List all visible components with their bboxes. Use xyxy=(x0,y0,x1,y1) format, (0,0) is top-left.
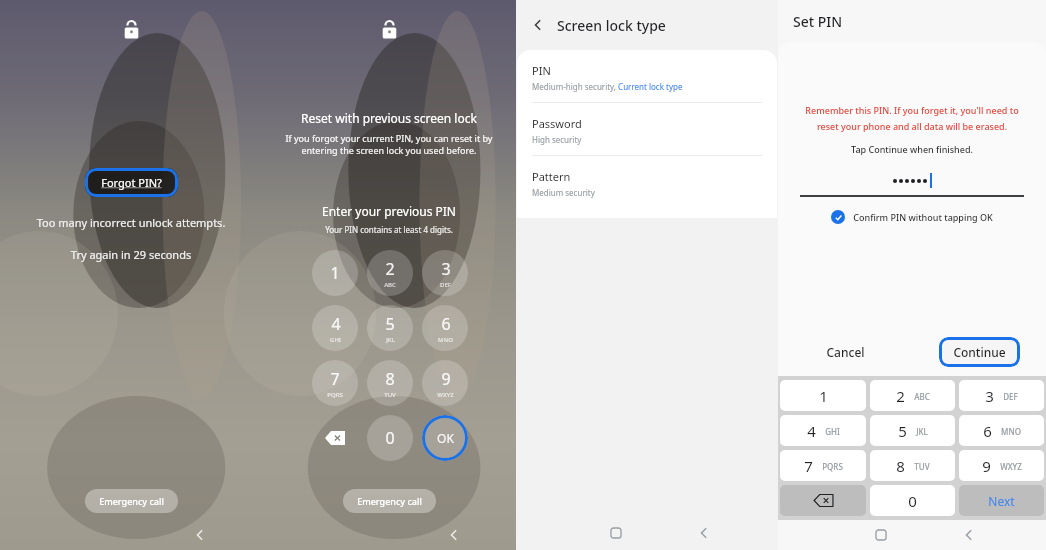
button[interactable]: 3 xyxy=(422,250,468,296)
staticText: 8 xyxy=(896,456,905,476)
staticText: TUV xyxy=(914,461,930,472)
button[interactable]: 5 xyxy=(367,305,413,351)
staticText: ABC xyxy=(914,391,930,402)
staticText: 6 xyxy=(441,313,451,335)
staticText: MNO xyxy=(438,336,453,344)
staticText: 3 xyxy=(441,258,451,280)
staticText: GHI xyxy=(825,426,840,437)
staticText: Medium-high security, xyxy=(532,81,616,92)
staticText: Cancel xyxy=(826,344,865,360)
button[interactable]: 8 xyxy=(870,450,955,481)
button[interactable]: 0 xyxy=(870,485,955,516)
button[interactable]: 1 xyxy=(312,250,358,296)
staticText: DEF xyxy=(440,281,451,289)
button[interactable]: Delete xyxy=(780,485,866,516)
button[interactable]: Emergency call xyxy=(343,489,436,513)
button[interactable]: 8 xyxy=(367,360,413,406)
staticText: Continue xyxy=(953,344,1006,360)
button[interactable]: 0 xyxy=(367,415,413,461)
staticText: OK xyxy=(437,430,454,446)
button[interactable]: Confirm PIN without tapping OK xyxy=(778,210,1046,224)
button[interactable]: 7 xyxy=(312,360,358,406)
button[interactable]: Home xyxy=(872,526,890,544)
staticText: Emergency call xyxy=(99,495,164,507)
staticText: 6 xyxy=(983,421,992,441)
button[interactable]: Cancel xyxy=(778,328,912,376)
staticText: Reset with previous screen lock xyxy=(262,110,516,126)
staticText: High security xyxy=(532,134,582,145)
button[interactable]: 9 xyxy=(959,450,1044,481)
staticText: 7 xyxy=(330,368,340,390)
other: Locked xyxy=(123,19,140,39)
button[interactable]: 9 xyxy=(422,360,468,406)
staticText: Forgot PIN? xyxy=(101,175,162,190)
staticText: Try again in 29 seconds xyxy=(0,247,262,262)
staticText: PQRS xyxy=(327,391,343,399)
staticText: PQRS xyxy=(822,461,843,472)
staticText: 0 xyxy=(385,427,395,449)
staticText: JKL xyxy=(386,336,395,344)
button[interactable]: Emergency call xyxy=(85,489,178,513)
other: Locked xyxy=(381,19,398,39)
staticText: TUV xyxy=(384,391,396,399)
staticText: JKL xyxy=(916,426,928,437)
button[interactable]: Back xyxy=(191,526,209,544)
staticText: If you forgot your current PIN, you can … xyxy=(262,132,516,157)
button[interactable]: 5 xyxy=(870,415,955,446)
button[interactable]: Home xyxy=(607,524,625,542)
staticText: Current lock type xyxy=(616,81,683,92)
staticText: Medium security xyxy=(532,187,595,198)
staticText: 5 xyxy=(898,421,907,441)
staticText: 0 xyxy=(908,491,917,511)
staticText: PIN xyxy=(532,63,551,78)
staticText: 2 xyxy=(385,258,395,280)
staticText: 7 xyxy=(804,456,813,476)
staticText: Password xyxy=(532,116,582,131)
button[interactable]: 3 xyxy=(959,380,1044,411)
staticText: MNO xyxy=(1001,426,1021,437)
staticText: 3 xyxy=(985,386,994,406)
staticText: 9 xyxy=(441,368,451,390)
staticText: Your PIN contains at least 4 digits. xyxy=(262,224,516,235)
button[interactable]: Continue xyxy=(939,337,1020,367)
button[interactable]: Forgot PIN? xyxy=(85,168,178,197)
button[interactable]: Next xyxy=(959,485,1044,516)
button[interactable]: 2 xyxy=(367,250,413,296)
staticText: 4 xyxy=(807,421,816,441)
button[interactable]: Delete xyxy=(307,410,362,465)
button[interactable]: PIN xyxy=(517,50,777,103)
button[interactable]: Pattern xyxy=(517,156,777,208)
staticText: Pattern xyxy=(532,169,571,184)
button[interactable]: 4 xyxy=(312,305,358,351)
button[interactable]: 1 xyxy=(780,380,866,411)
staticText: Screen lock type xyxy=(557,16,666,35)
button[interactable]: Password xyxy=(517,103,777,156)
button[interactable]: Back xyxy=(695,524,713,542)
staticText: ABC xyxy=(384,281,396,289)
staticText: WXYZ xyxy=(1000,461,1022,472)
staticText: GHI xyxy=(330,336,341,344)
staticText: 9 xyxy=(982,456,991,476)
staticText: Emergency call xyxy=(357,495,422,507)
staticText: Enter your previous PIN xyxy=(262,203,516,219)
staticText: 4 xyxy=(331,313,341,335)
button[interactable]: Back xyxy=(445,526,463,544)
button[interactable]: Back xyxy=(960,526,978,544)
staticText: 5 xyxy=(385,313,395,335)
staticText: 1 xyxy=(819,386,828,406)
staticText: Next xyxy=(988,493,1015,509)
staticText: Too many incorrect unlock attempts. xyxy=(0,215,262,230)
staticText: Remember this PIN. If you forget it, you… xyxy=(778,104,1046,133)
button[interactable]: OK xyxy=(422,415,468,461)
staticText: WXYZ xyxy=(437,391,454,399)
button[interactable]: 6 xyxy=(422,305,468,351)
staticText: 2 xyxy=(896,386,905,406)
staticText: Set PIN xyxy=(793,12,843,31)
button[interactable]: 2 xyxy=(870,380,955,411)
staticText: Tap Continue when finished. xyxy=(778,143,1046,155)
button[interactable]: 7 xyxy=(780,450,866,481)
staticText: 8 xyxy=(385,368,395,390)
button[interactable]: 4 xyxy=(780,415,866,446)
button[interactable]: Back xyxy=(529,16,547,34)
button[interactable]: 6 xyxy=(959,415,1044,446)
